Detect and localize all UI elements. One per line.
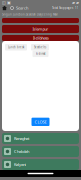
- button[interactable]: Ranaghat: [2, 133, 79, 144]
- staticText: Chakdah: [14, 149, 29, 154]
- button[interactable]: Home: [2, 5, 7, 10]
- button[interactable]: Kalyani: [2, 159, 79, 170]
- staticText: ◫ ▣: [2, 0, 11, 5]
- staticText: Lunch break: [8, 45, 24, 49]
- button[interactable]: Lunch break: [5, 44, 27, 50]
- staticText: CLOSE: [34, 119, 46, 124]
- staticText: Total Stoppages 11: [52, 6, 79, 10]
- staticText: Search: [16, 5, 28, 11]
- staticText: ▰ ▰: [72, 0, 79, 5]
- button[interactable]: Seatbelts: [31, 44, 49, 50]
- staticText: Seatbelts: [34, 45, 46, 49]
- staticText: Islampur: [32, 26, 48, 32]
- button[interactable]: Chakdah: [2, 146, 79, 157]
- staticText: Teslimat: [35, 52, 45, 55]
- staticText: Kalyani: [14, 162, 26, 167]
- button[interactable]: CLOSE: [31, 118, 49, 126]
- button[interactable]: Teslimat: [32, 50, 48, 57]
- staticText: Belibhata: [32, 35, 48, 41]
- button[interactable]: Search: [10, 5, 28, 11]
- staticText: Siliguri Junction–Sealdah Darjeeling Mai…: [2, 13, 58, 16]
- staticText: Ranaghat: [14, 136, 29, 141]
